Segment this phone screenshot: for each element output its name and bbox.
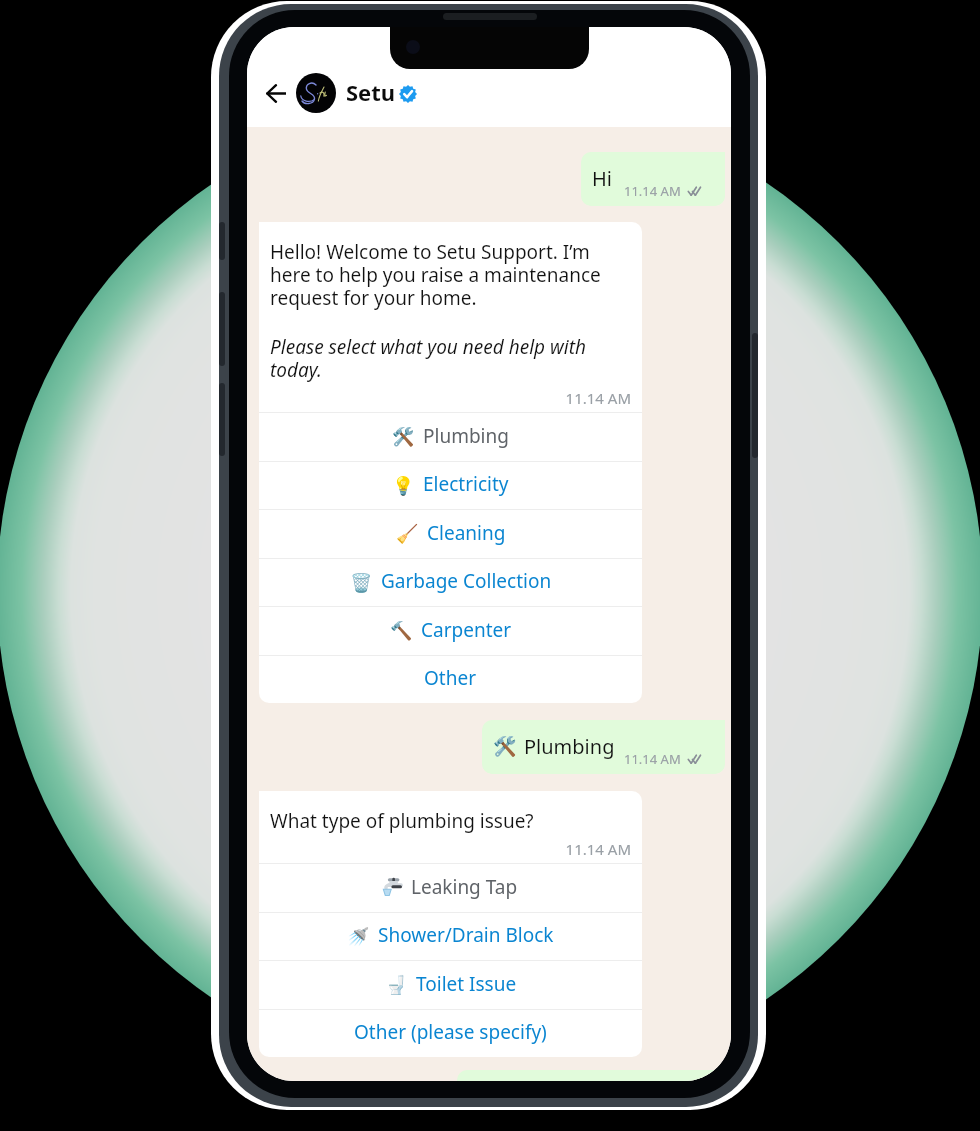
staticText: Leaking Tap (411, 874, 518, 900)
button[interactable]: Hi (581, 152, 725, 206)
staticText: Hi (592, 165, 612, 192)
staticText: 🔨 (390, 620, 413, 641)
staticText: Garbage Collection (381, 568, 552, 594)
staticText: 🛠 (392, 426, 415, 447)
button[interactable]: 🧹 (259, 509, 642, 558)
staticText: 11.14 AM (624, 750, 681, 768)
button[interactable]: Leaking Tap (259, 863, 642, 912)
staticText: 🧹 (396, 523, 419, 544)
staticText: 11.14 AM (270, 388, 631, 408)
button[interactable]: 🛠 (259, 412, 642, 461)
button[interactable]: 🚽 (259, 960, 642, 1009)
staticText: 11.14 AM (270, 839, 631, 859)
staticText: Other (please specify) (354, 1019, 547, 1045)
staticText: 🛠 (493, 735, 517, 757)
button[interactable]: 💡 (259, 461, 642, 509)
button[interactable]: 🛠 (482, 720, 725, 774)
staticText: Toilet Issue (416, 971, 517, 997)
staticText: 💡 (392, 475, 415, 496)
staticText: Plumbing (524, 733, 615, 760)
staticText: Carpenter (421, 617, 512, 643)
staticText: What type of plumbing issue? (270, 808, 534, 834)
button[interactable]: Other (259, 655, 642, 703)
button[interactable]: Other (please specify) (259, 1009, 642, 1057)
staticText: Shower/Drain Block (378, 922, 554, 948)
staticText: 🗑 (350, 572, 373, 593)
button[interactable]: 🔨 (259, 606, 642, 655)
staticText: Cleaning (427, 520, 506, 546)
button[interactable]: Back (259, 76, 293, 110)
staticText: 🚽 (385, 974, 408, 995)
staticText: Electricity (423, 471, 509, 497)
staticText: Other (424, 665, 477, 691)
staticText: 🚿 (347, 926, 370, 947)
button[interactable]: 🗑 (259, 558, 642, 606)
staticText: Setu (346, 77, 396, 107)
staticText: Plumbing (423, 423, 509, 449)
staticText: Please select what you need help with to… (270, 334, 631, 383)
button[interactable]: Setu profile (296, 73, 336, 113)
button[interactable]: 🚿 (259, 912, 642, 960)
staticText: Hello! Welcome to Setu Support. I’m here… (270, 239, 631, 311)
staticText: 11.14 AM (624, 182, 681, 200)
